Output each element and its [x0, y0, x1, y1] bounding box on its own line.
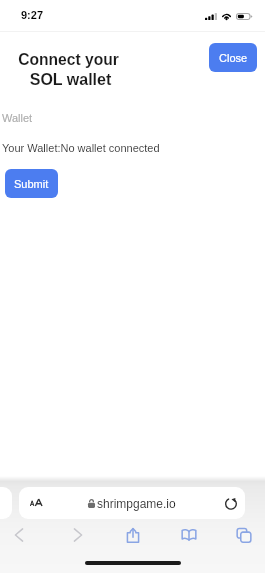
- staticText: Your Wallet:No wallet connected: [2, 142, 160, 154]
- button[interactable]: Share: [116, 518, 150, 552]
- staticText: Submit: [14, 178, 49, 190]
- staticText: SOL wallet: [20, 71, 121, 89]
- button[interactable]: Reload: [221, 493, 241, 513]
- button[interactable]: Submit: [5, 169, 58, 198]
- staticText: Wallet: [2, 112, 33, 124]
- staticText: 9:27: [21, 9, 44, 21]
- button[interactable]: Forward: [61, 518, 95, 552]
- button[interactable]: Text size: [19, 487, 245, 519]
- staticText: Close: [219, 52, 248, 64]
- button[interactable]: Text size: [23, 490, 49, 516]
- staticText: Connect your: [18, 51, 119, 68]
- button[interactable]: Close: [209, 43, 257, 72]
- button[interactable]: Back: [2, 518, 36, 552]
- button[interactable]: Tabs: [227, 518, 261, 552]
- staticText: shrimpgame.io: [97, 497, 176, 510]
- button[interactable]: Bookmarks: [172, 518, 206, 552]
